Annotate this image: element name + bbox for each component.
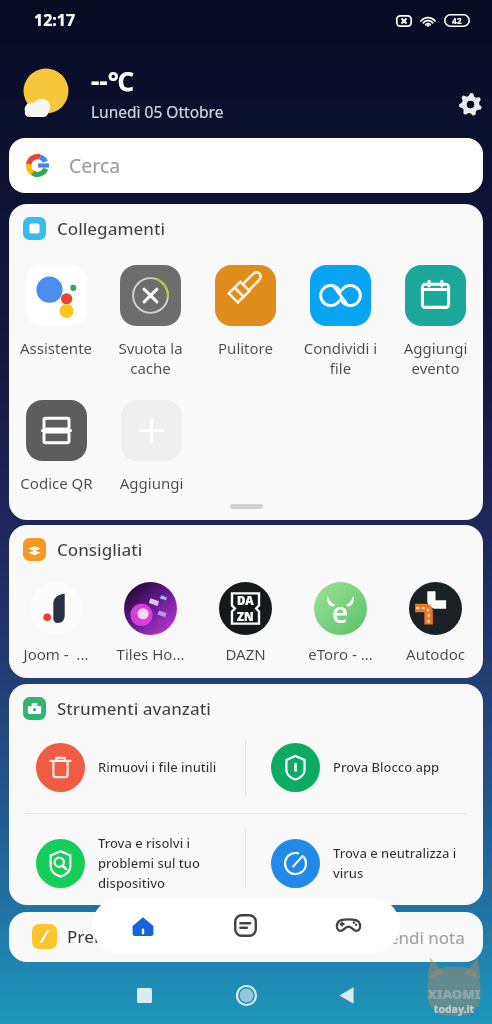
button[interactable]: Tiles Ho... [103,582,198,664]
button[interactable]: Prova Blocco app [244,734,483,800]
staticText: DA [237,593,254,609]
staticText: Trova e risolvi i problemi sul tuo dispo… [98,834,211,892]
staticText: Cerca [69,152,121,179]
button[interactable]: Pulitore [198,265,293,358]
button[interactable]: Recenti [122,973,166,1017]
staticText: 12:17 [34,9,76,31]
button[interactable]: Indietro [324,973,368,1017]
staticText: Svuota la cache [104,338,197,378]
button[interactable]: Home [224,973,268,1017]
staticText: Prova Blocco app [333,758,463,776]
staticText: XIAOMI [421,985,487,1003]
button[interactable]: Rimuovi i file inutili [9,734,246,800]
staticText: Joom - ... [9,644,103,664]
staticText: Pulitore [199,338,292,358]
staticText: Prendi nota [372,926,465,949]
button[interactable]: Note [194,898,297,953]
staticText: Prendi nota [67,925,162,948]
staticText: Strumenti avanzati [57,697,211,720]
button[interactable]: Assistente [9,265,103,358]
button[interactable]: Giochi [297,898,400,953]
staticText: today.it [421,1002,487,1016]
staticText: Assistente [10,338,102,358]
button[interactable]: Trova e risolvi i problemi sul tuo dispo… [9,821,246,905]
button[interactable]: Condividi i file [293,265,388,378]
button[interactable]: Autodoc [388,582,483,664]
staticText: Rimuovi i file inutili [98,758,223,776]
staticText: Consigliati [57,538,143,561]
staticText: Codice QR [10,473,103,493]
button[interactable]: Svuota la cache [103,265,198,378]
button[interactable]: Codice QR [9,400,104,493]
button[interactable]: Trova e neutralizza i virus [244,821,483,905]
staticText: eToro - ... [293,644,388,664]
button[interactable]: Impostazioni [453,87,487,121]
staticText: 42 [452,15,462,27]
staticText: DAZN [198,644,293,664]
staticText: Condividi i file [294,338,387,378]
button[interactable]: DA [198,582,293,664]
staticText: ZN [237,609,254,625]
staticText: Lunedì 05 Ottobre [91,101,224,122]
staticText: Collegamenti [57,217,166,240]
staticText: e [332,593,349,631]
button[interactable]: Joom - ... [9,582,103,664]
button[interactable]: Aggiungi evento [388,265,483,378]
button[interactable]: Aggiungi [104,400,199,493]
button[interactable]: Home [92,898,194,953]
staticText: --℃ [91,63,134,98]
staticText: Autodoc [388,644,483,664]
staticText: Trova e neutralizza i virus [333,844,458,882]
staticText: Aggiungi evento [389,338,482,378]
staticText: Aggiungi [105,473,198,493]
button[interactable]: Cerca [9,138,483,193]
button[interactable]: e [293,582,388,664]
staticText: Tiles Ho... [103,644,198,664]
